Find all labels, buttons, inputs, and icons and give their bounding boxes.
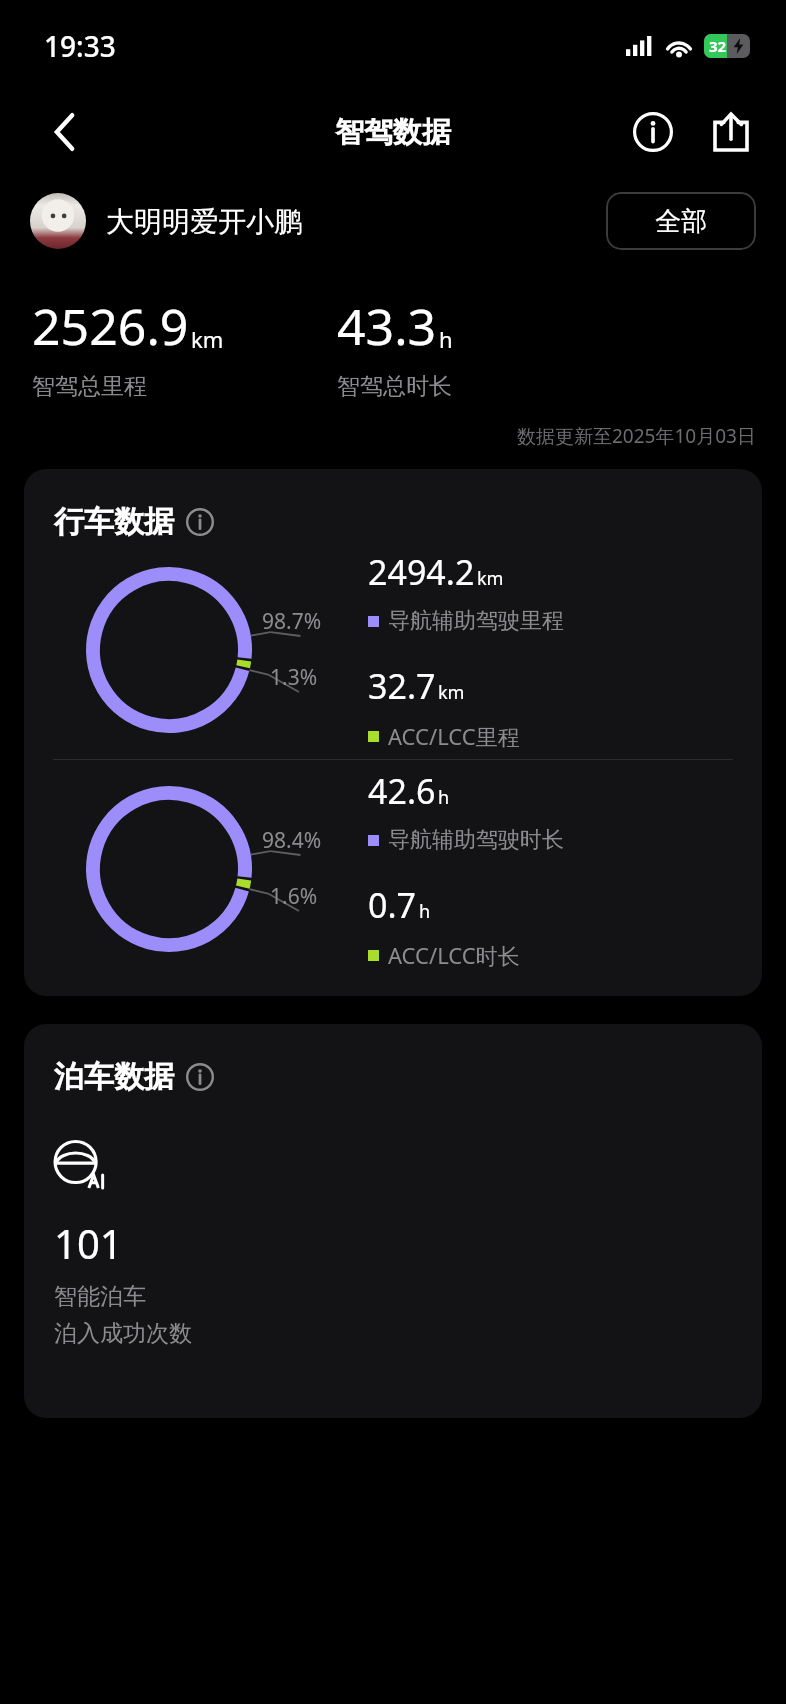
staticText: 智驾总时长 <box>337 372 452 401</box>
staticText: 导航辅助驾驶时长 <box>388 826 564 854</box>
staticText: 智能泊车 <box>54 1282 146 1311</box>
button[interactable]: 大明明爱开小鹏 <box>106 204 302 239</box>
staticText: 0.7 <box>368 882 417 928</box>
staticText: ACC/LCC里程 <box>388 721 520 751</box>
staticText: 43.3 <box>337 292 437 360</box>
button[interactable]: Avatar <box>30 193 86 249</box>
staticText: 19:33 <box>44 27 116 65</box>
button[interactable]: Share <box>700 101 762 163</box>
button[interactable]: 行车数据 <box>24 469 762 996</box>
staticText: 智驾总里程 <box>32 372 147 401</box>
staticText: km <box>191 324 224 354</box>
staticText: h <box>439 324 453 354</box>
staticText: 泊车数据 <box>54 1058 174 1096</box>
staticText: km <box>477 566 504 591</box>
staticText: 泊入成功次数 <box>54 1319 192 1348</box>
staticText: 1.6% <box>270 882 318 911</box>
staticText: 32.7 <box>368 663 436 709</box>
staticText: 1.3% <box>270 663 318 692</box>
staticText: 智驾数据 <box>335 114 451 151</box>
staticText: h <box>419 899 431 924</box>
staticText: 2494.2 <box>368 549 475 595</box>
button[interactable]: Back <box>26 93 104 171</box>
staticText: 98.7% <box>262 607 322 636</box>
button[interactable]: 全部 <box>606 192 756 250</box>
button[interactable]: 泊车数据 <box>24 1024 762 1418</box>
staticText: ACC/LCC时长 <box>388 940 520 970</box>
staticText: 98.4% <box>262 826 322 855</box>
staticText: 101 <box>54 1216 123 1270</box>
staticText: 42.6 <box>368 768 436 814</box>
staticText: 数据更新至2025年10月03日 <box>517 423 756 449</box>
staticText: 全部 <box>655 205 707 238</box>
staticText: 行车数据 <box>54 503 174 541</box>
button[interactable]: Info <box>622 101 684 163</box>
staticText: h <box>438 785 450 810</box>
staticText: km <box>438 680 465 705</box>
staticText: 2526.9 <box>32 292 189 360</box>
staticText: 32 <box>709 36 727 56</box>
staticText: 导航辅助驾驶里程 <box>388 607 564 635</box>
